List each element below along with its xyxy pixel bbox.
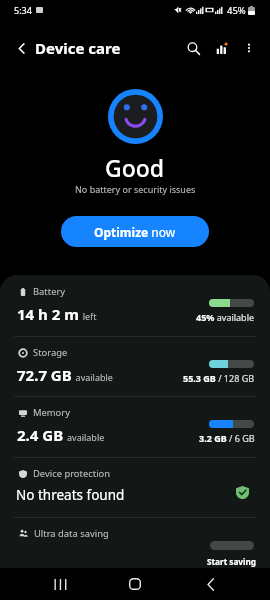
button[interactable]: Memory	[0, 396, 270, 457]
staticText: Battery	[33, 285, 66, 298]
staticText: 45% available	[196, 311, 255, 323]
button[interactable]: Usage details	[207, 33, 237, 63]
staticText: Device care	[35, 38, 121, 58]
staticText: 3.2 GB / 6 GB	[199, 432, 255, 444]
button[interactable]: Recent apps	[38, 568, 82, 600]
staticText: Start saving	[207, 556, 256, 567]
staticText: Ultra data saving	[34, 527, 109, 540]
staticText: No threats found	[16, 486, 125, 504]
staticText: No battery or security issues	[75, 183, 196, 195]
staticText: 55.3 GB / 128 GB	[183, 372, 255, 384]
button[interactable]: Ultra data saving	[0, 517, 270, 568]
staticText: 45%	[227, 4, 246, 17]
button[interactable]: Device protection	[0, 457, 270, 518]
staticText: 14 h 2 m left	[17, 304, 97, 324]
staticText: 2.4 GB available	[17, 425, 105, 445]
staticText: Storage	[33, 346, 68, 359]
staticText: Good	[105, 152, 165, 183]
staticText: Memory	[33, 406, 70, 419]
button[interactable]: Navigate up	[6, 33, 36, 63]
button[interactable]: More options	[234, 33, 264, 63]
staticText: 72.7 GB available	[17, 365, 113, 385]
button[interactable]: Optimize now	[61, 216, 209, 247]
button[interactable]: Storage	[0, 336, 270, 397]
staticText: 5:34	[14, 4, 32, 16]
button[interactable]: Battery	[0, 275, 270, 336]
staticText: Device protection	[33, 467, 111, 480]
button[interactable]: Home	[113, 568, 157, 600]
staticText: Optimize now	[94, 224, 176, 240]
button[interactable]: Search	[178, 33, 208, 63]
button[interactable]: Back	[188, 568, 232, 600]
